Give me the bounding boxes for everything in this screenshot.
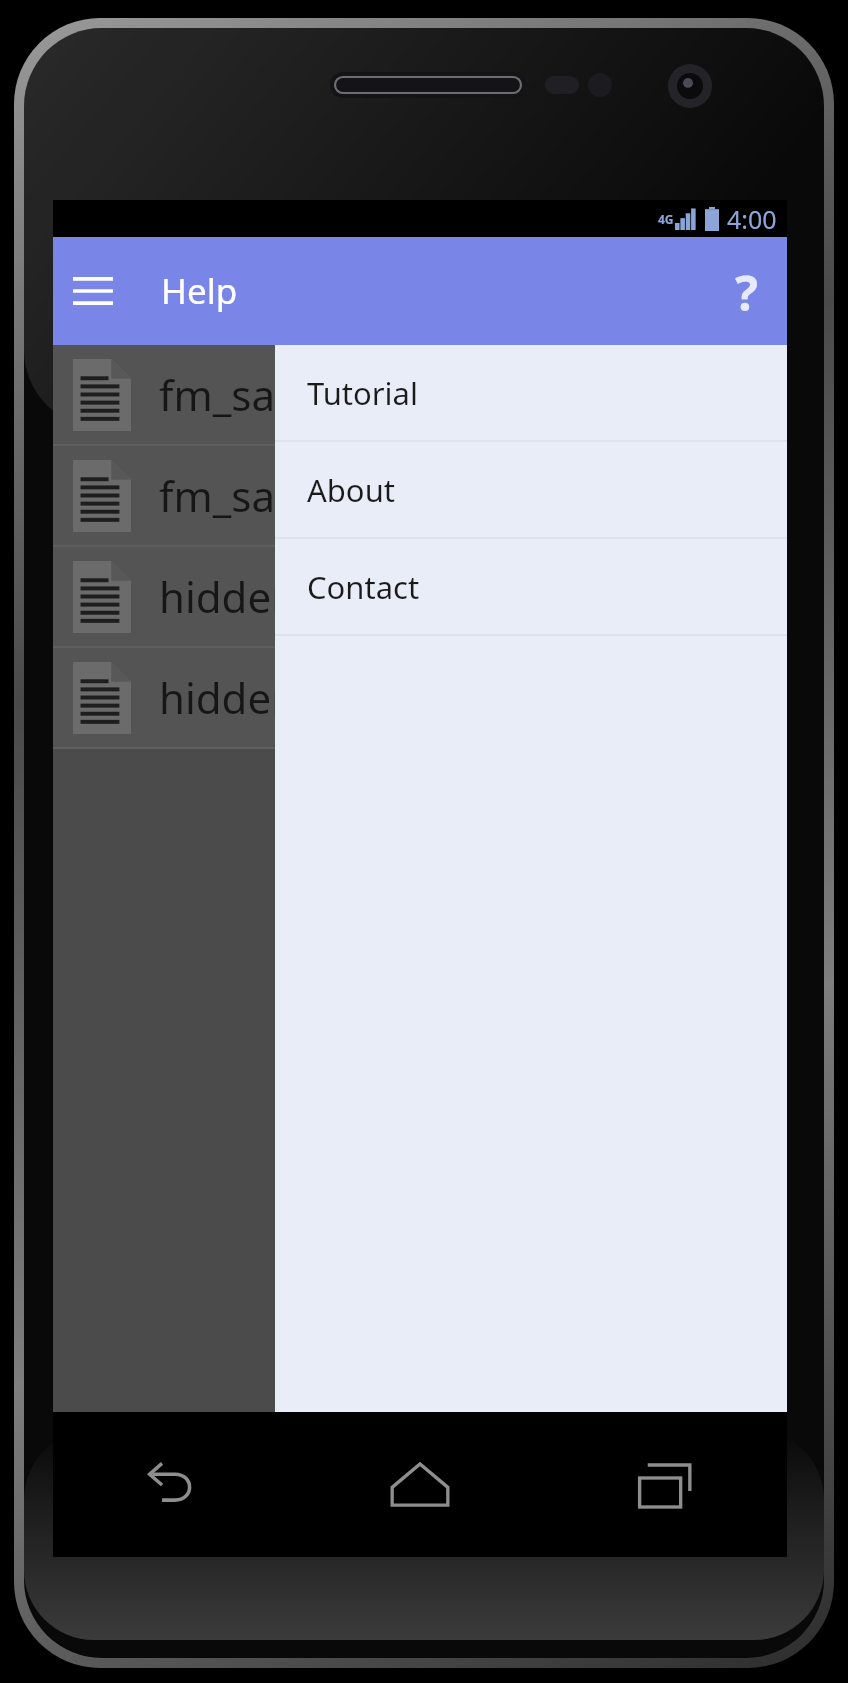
button[interactable]: hidden_file_b <box>53 648 787 747</box>
button[interactable]: About <box>275 442 787 537</box>
staticText: Help <box>161 267 238 315</box>
button[interactable]: Home <box>297 1412 542 1557</box>
staticText: fm_sample_two <box>159 467 467 524</box>
staticText: fm_sample_one <box>159 366 469 423</box>
button[interactable]: Help <box>715 260 777 322</box>
staticText: About <box>307 469 395 511</box>
button[interactable]: Back <box>53 1412 297 1557</box>
button[interactable]: Open navigation drawer <box>65 263 121 319</box>
button[interactable]: Contact <box>275 539 787 634</box>
staticText: Tutorial <box>307 372 418 414</box>
button[interactable]: Tutorial <box>275 345 787 440</box>
button[interactable]: fm_sample_two <box>53 446 787 545</box>
button[interactable]: hidden_file_a <box>53 547 787 646</box>
button[interactable]: Recent apps <box>542 1412 787 1557</box>
staticText: 4G <box>658 211 674 227</box>
staticText: hidden_file_a <box>159 568 418 625</box>
staticText: hidden_file_b <box>159 669 421 726</box>
staticText: Contact <box>307 566 420 608</box>
staticText: 4:00 <box>727 202 777 236</box>
button[interactable]: fm_sample_one <box>53 345 787 444</box>
staticText: ? <box>735 260 758 322</box>
